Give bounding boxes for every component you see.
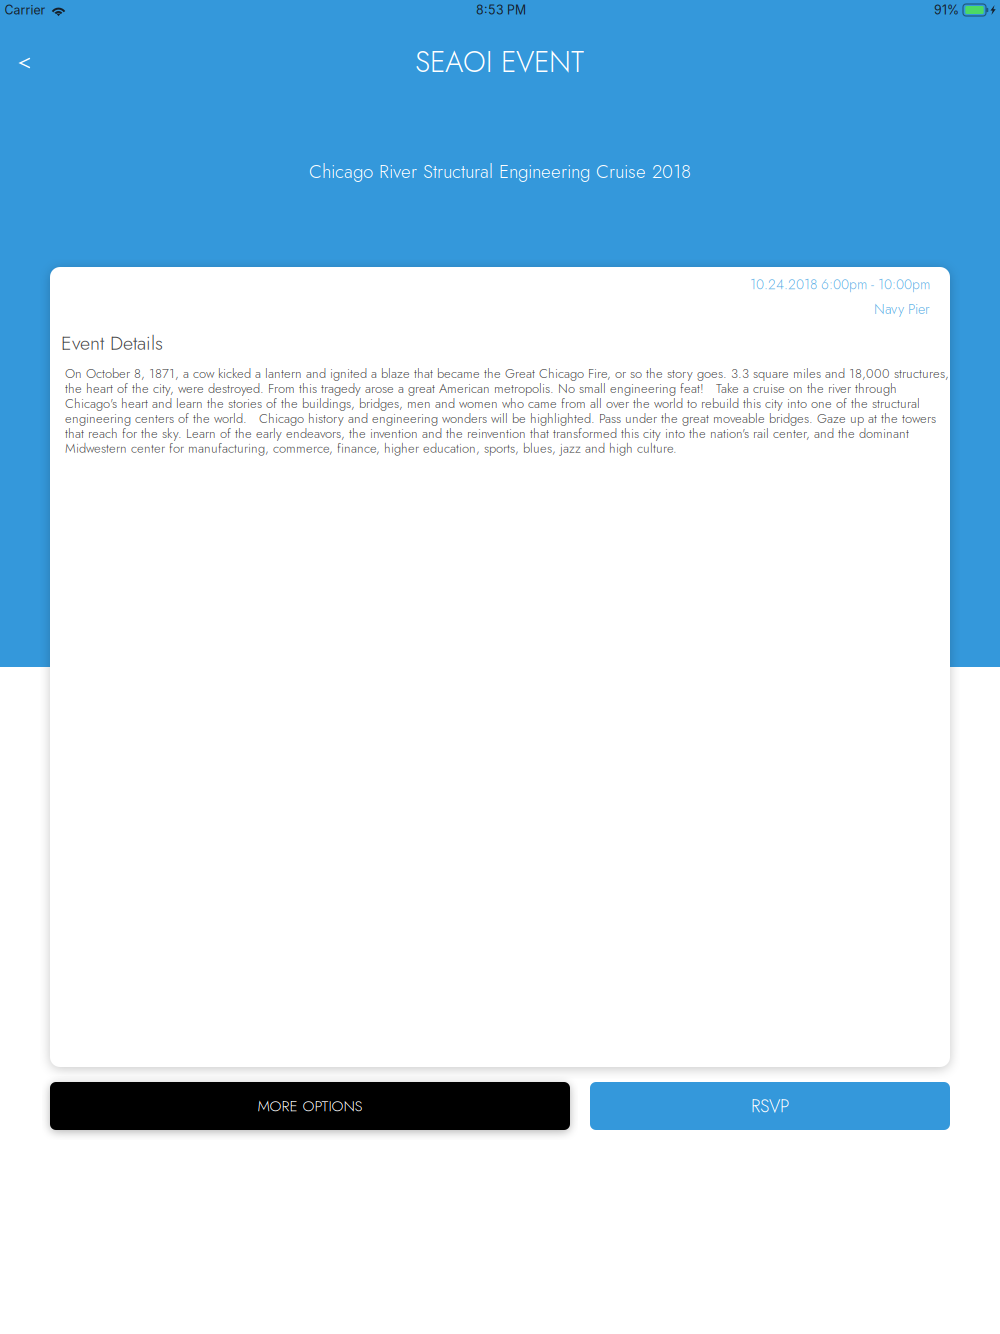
staticText: On October 8, 1871, a cow kicked a lante…	[65, 366, 949, 456]
button[interactable]: RSVP	[590, 1082, 950, 1130]
staticText: 10.24.2018 6:00pm - 10:00pm	[750, 274, 930, 294]
button[interactable]: Back	[3, 41, 47, 85]
staticText: 8:53 PM	[476, 2, 526, 17]
button[interactable]: MORE OPTIONS	[50, 1082, 570, 1130]
staticText: Chicago River Structural Engineering Cru…	[309, 158, 691, 185]
staticText: Carrier	[4, 2, 45, 17]
staticText: MORE OPTIONS	[257, 1095, 362, 1117]
staticText: Navy Pier	[874, 299, 930, 319]
staticText: SEAOI EVENT	[415, 41, 584, 83]
staticText: RSVP	[751, 1093, 789, 1119]
staticText: 91%	[934, 2, 959, 17]
staticText: Event Details	[61, 329, 163, 357]
